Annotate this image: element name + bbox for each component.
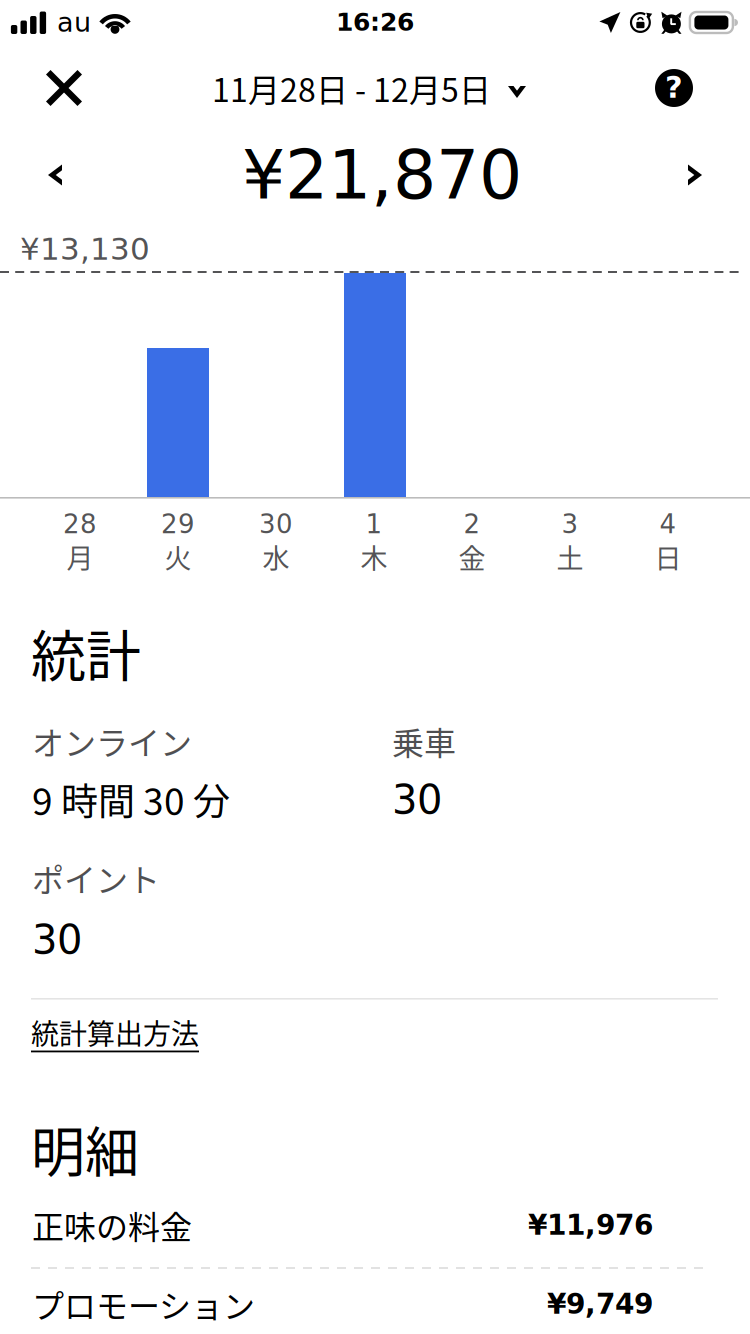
staticText: プロモーション — [32, 1281, 255, 1327]
staticText: 2 — [463, 509, 480, 539]
button[interactable]: ヘルプ — [632, 46, 716, 130]
staticText: 4 — [659, 509, 676, 539]
staticText: 統計 — [31, 612, 141, 692]
staticText: 月 — [66, 537, 93, 576]
staticText: 水 — [262, 537, 289, 576]
staticText: 正味の料金 — [32, 1202, 192, 1248]
button[interactable]: 次の週 — [657, 139, 733, 211]
button[interactable]: 統計算出方法 — [31, 1012, 199, 1054]
staticText: 30 — [259, 509, 293, 539]
staticText: au — [57, 7, 91, 38]
staticText: 11月28日 - 12月5日 — [212, 65, 491, 111]
staticText: 9 時間 30 分 — [32, 772, 230, 826]
staticText: 金 — [458, 537, 485, 576]
staticText: 1 — [365, 509, 382, 539]
staticText: ¥11,976 — [528, 1209, 653, 1241]
staticText: 28 — [63, 509, 97, 539]
staticText: 木 — [360, 537, 387, 576]
staticText: オンライン — [32, 718, 192, 764]
button[interactable]: 11月28日 - 12月5日 — [202, 49, 536, 127]
staticText: ¥21,870 — [242, 135, 522, 215]
staticText: ¥13,130 — [20, 231, 150, 267]
staticText: 火 — [164, 537, 191, 576]
staticText: 16:26 — [336, 7, 414, 36]
staticText: ? — [665, 69, 683, 105]
staticText: ¥9,749 — [547, 1288, 653, 1320]
staticText: ポイント — [32, 855, 160, 901]
staticText: 土 — [556, 537, 583, 576]
staticText: 乗車 — [392, 718, 456, 764]
staticText: 3 — [561, 509, 578, 539]
button[interactable]: 閉じる — [22, 46, 106, 130]
staticText: 29 — [161, 509, 195, 539]
staticText: 統計算出方法 — [31, 1012, 199, 1052]
staticText: 30 — [32, 917, 82, 963]
staticText: 日 — [654, 537, 681, 576]
staticText: 明細 — [31, 1110, 139, 1188]
button[interactable]: 前の週 — [17, 139, 93, 211]
staticText: 30 — [392, 777, 442, 823]
